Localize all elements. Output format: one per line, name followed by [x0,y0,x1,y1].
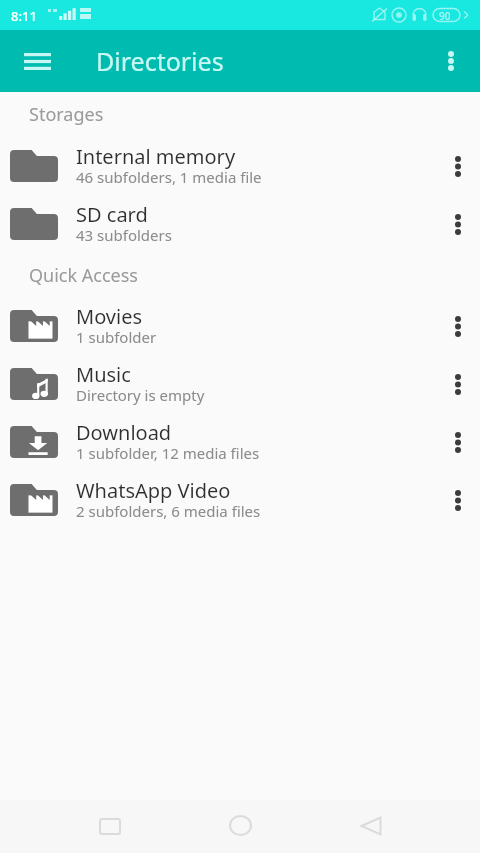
button[interactable]: WhatsApp Video [0,471,480,529]
staticText: Storages [29,102,104,127]
button[interactable]: More options for WhatsApp Video [435,471,480,529]
staticText: Movies [76,303,143,330]
button[interactable]: SD card [0,195,480,253]
staticText: Download [76,419,172,446]
staticText: 8:11 [11,7,37,25]
button[interactable]: Home [215,800,265,853]
staticText: Internal memory [76,143,236,170]
button[interactable]: More options for Movies [435,297,480,355]
staticText: 90 [439,9,451,23]
button[interactable]: Movies [0,297,480,355]
button[interactable]: More options for Internal memory [435,137,480,195]
button[interactable]: Open navigation menu [0,30,74,92]
button[interactable]: More options for Music [435,355,480,413]
button[interactable]: More options [421,30,480,92]
staticText: Directory is empty [76,385,205,405]
staticText: 46 subfolders, 1 media file [76,167,262,187]
staticText: Directories [96,44,224,78]
staticText: 2 subfolders, 6 media files [76,501,261,521]
button[interactable]: More options for SD card [435,195,480,253]
staticText: SD card [76,201,148,228]
staticText: Quick Access [29,263,138,288]
button[interactable]: Music [0,355,480,413]
button[interactable]: Recent apps [85,800,134,853]
staticText: WhatsApp Video [76,477,231,504]
staticText: 1 subfolder, 12 media files [76,443,260,463]
staticText: 43 subfolders [76,225,172,245]
button[interactable]: Internal memory [0,137,480,195]
button[interactable]: Download [0,413,480,471]
staticText: 1 subfolder [76,327,157,347]
button[interactable]: Back [346,800,395,853]
button[interactable]: More options for Download [435,413,480,471]
staticText: Music [76,361,131,388]
